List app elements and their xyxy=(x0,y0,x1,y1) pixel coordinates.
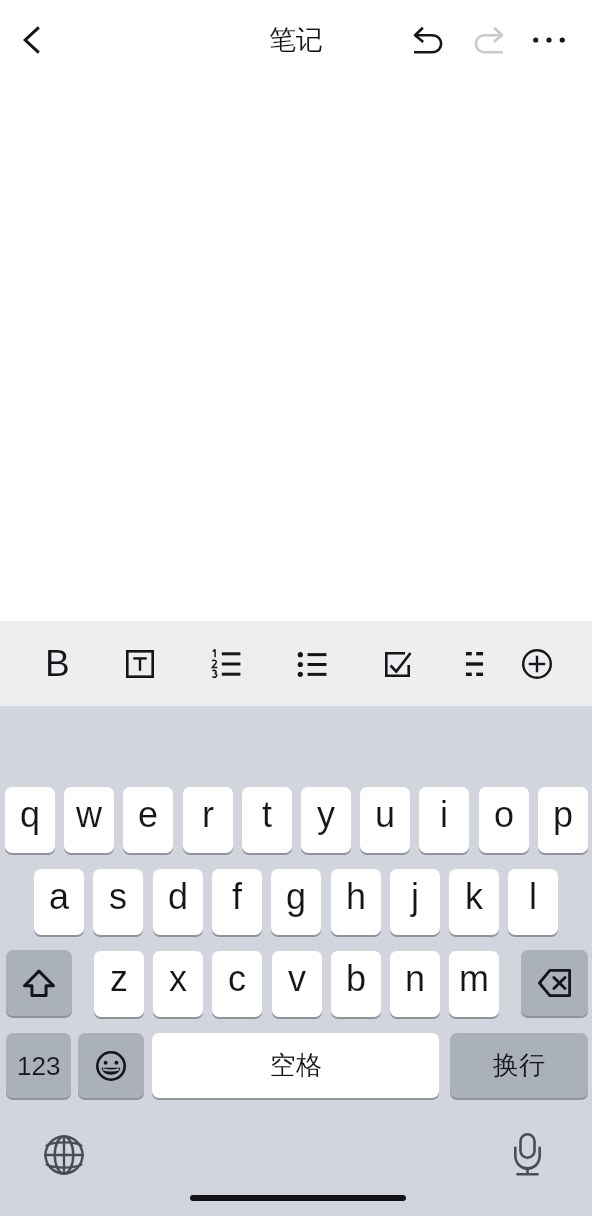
staticText: b xyxy=(346,958,367,998)
button[interactable]: x xyxy=(153,951,203,1017)
button[interactable]: e xyxy=(123,787,173,853)
button[interactable]: u xyxy=(360,787,410,853)
staticText: q xyxy=(20,794,41,834)
button[interactable]: m xyxy=(449,951,499,1017)
staticText: g xyxy=(286,876,307,916)
button[interactable]: o xyxy=(479,787,529,853)
staticText: v xyxy=(288,958,306,998)
button[interactable]: Numbered list xyxy=(200,638,252,690)
staticText: u xyxy=(375,794,396,834)
button[interactable]: a xyxy=(34,869,84,935)
button[interactable]: d xyxy=(153,869,203,935)
button[interactable]: y xyxy=(301,787,351,853)
button[interactable]: p xyxy=(538,787,588,853)
staticText: B xyxy=(45,643,70,684)
button[interactable]: g xyxy=(271,869,321,935)
button[interactable]: b xyxy=(331,951,381,1017)
staticText: z xyxy=(110,958,128,998)
staticText: k xyxy=(465,876,483,916)
button[interactable]: t xyxy=(242,787,292,853)
button[interactable]: i xyxy=(419,787,469,853)
staticText: e xyxy=(138,794,159,834)
staticText: p xyxy=(553,794,574,834)
button[interactable]: Bullet list xyxy=(286,638,338,690)
button[interactable]: Bold xyxy=(31,638,83,690)
button[interactable]: Backspace xyxy=(521,950,588,1016)
button[interactable]: v xyxy=(272,951,322,1017)
staticText: i xyxy=(440,794,448,834)
staticText: x xyxy=(169,958,187,998)
staticText: 换行 xyxy=(493,1049,545,1082)
staticText: n xyxy=(405,958,426,998)
button[interactable]: Voice input xyxy=(503,1130,551,1178)
staticText: 空格 xyxy=(270,1049,322,1082)
button[interactable]: 123 xyxy=(6,1033,71,1098)
staticText: a xyxy=(49,876,70,916)
staticText: m xyxy=(459,958,489,998)
button[interactable]: q xyxy=(5,787,55,853)
button[interactable]: c xyxy=(212,951,262,1017)
button[interactable]: Undo xyxy=(405,16,453,64)
button[interactable]: Emoji xyxy=(78,1033,144,1098)
button[interactable]: Redo xyxy=(464,16,512,64)
button[interactable]: k xyxy=(449,869,499,935)
button[interactable]: Text style xyxy=(114,638,166,690)
button[interactable]: More options xyxy=(525,16,573,64)
staticText: c xyxy=(228,958,246,998)
button[interactable]: Back xyxy=(8,16,56,64)
button[interactable]: l xyxy=(508,869,558,935)
staticText: f xyxy=(232,876,243,916)
button[interactable]: j xyxy=(390,869,440,935)
staticText: t xyxy=(262,794,273,834)
button[interactable]: Checklist xyxy=(371,638,423,690)
button[interactable]: r xyxy=(183,787,233,853)
button[interactable]: s xyxy=(93,869,143,935)
button[interactable]: f xyxy=(212,869,262,935)
button[interactable]: Insert xyxy=(511,638,563,690)
staticText: s xyxy=(109,876,127,916)
button[interactable]: 空格 xyxy=(152,1033,439,1098)
button[interactable]: n xyxy=(390,951,440,1017)
button[interactable]: z xyxy=(94,951,144,1017)
button[interactable]: w xyxy=(64,787,114,853)
staticText: d xyxy=(168,876,189,916)
staticText: j xyxy=(411,876,419,916)
staticText: l xyxy=(529,876,537,916)
button[interactable]: h xyxy=(331,869,381,935)
staticText: 123 xyxy=(17,1051,61,1080)
button[interactable]: Shift xyxy=(6,950,72,1016)
button[interactable]: 换行 xyxy=(450,1033,588,1098)
staticText: o xyxy=(494,794,515,834)
staticText: 笔记 xyxy=(269,23,323,57)
staticText: w xyxy=(76,794,102,834)
button[interactable]: Line spacing xyxy=(448,638,500,690)
staticText: h xyxy=(346,876,367,916)
button[interactable]: Switch language xyxy=(40,1131,88,1179)
staticText: y xyxy=(317,794,335,834)
staticText: r xyxy=(202,794,214,834)
